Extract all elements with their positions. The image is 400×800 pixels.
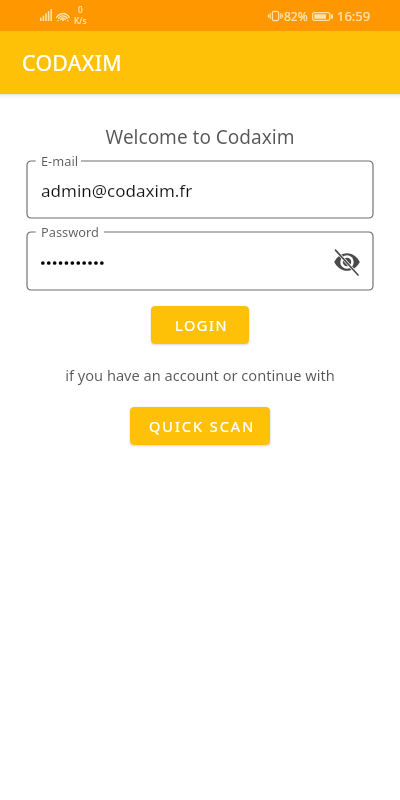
staticText: QUICK SCAN <box>149 416 256 436</box>
button[interactable]: QUICK SCAN <box>130 407 270 445</box>
staticText: 82% <box>284 8 308 24</box>
staticText: admin@codaxim.fr <box>41 179 193 202</box>
button[interactable]: Password <box>27 221 373 290</box>
staticText: 16:59 <box>337 7 371 25</box>
staticText: CODAXIM <box>22 48 122 77</box>
staticText: E-mail <box>41 152 78 169</box>
staticText: Password <box>41 223 99 240</box>
staticText: LOGIN <box>175 315 229 335</box>
staticText: if you have an account or continue with <box>0 365 400 385</box>
button[interactable]: LOGIN <box>151 306 249 344</box>
button[interactable]: Toggle password visibility <box>325 240 369 284</box>
staticText: 0 <box>78 4 83 15</box>
staticText: Welcome to Codaxim <box>0 124 400 150</box>
button[interactable]: E-mail <box>27 150 373 218</box>
staticText: K/s <box>74 15 87 27</box>
